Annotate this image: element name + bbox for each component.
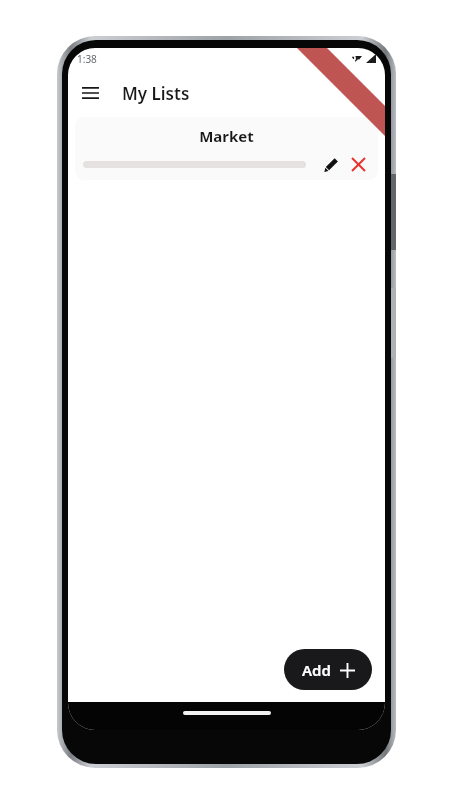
staticText: Add [302,660,331,680]
button[interactable]: Edit list [317,151,344,178]
staticText: 1:38 [77,52,97,66]
button[interactable]: Market [75,117,378,180]
staticText: Market [199,126,254,146]
staticText: My Lists [122,82,190,105]
staticText: DEBUG [345,51,380,85]
button[interactable]: Delete list [344,150,373,179]
button[interactable]: Open navigation menu [71,74,109,112]
button[interactable]: Add [284,649,372,690]
